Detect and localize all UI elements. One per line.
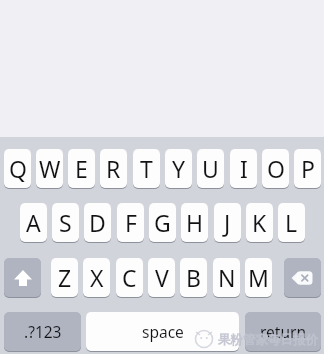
button[interactable]: U — [197, 149, 224, 188]
button[interactable]: P — [294, 149, 321, 188]
staticText: .?123 — [24, 321, 62, 342]
button[interactable]: F — [117, 203, 144, 242]
button[interactable] — [284, 258, 321, 297]
staticText: F — [125, 207, 137, 238]
button[interactable]: G — [149, 203, 176, 242]
staticText: V — [155, 262, 169, 293]
staticText: Y — [172, 153, 186, 184]
button[interactable]: J — [214, 203, 241, 242]
staticText: D — [89, 207, 106, 238]
staticText: M — [248, 262, 269, 293]
button[interactable]: W — [36, 149, 63, 188]
staticText: C — [122, 262, 137, 293]
button[interactable] — [4, 258, 41, 297]
button[interactable]: B — [180, 258, 207, 297]
button[interactable]: return — [245, 312, 321, 351]
button[interactable]: E — [68, 149, 95, 188]
staticText: R — [106, 153, 121, 184]
staticText: Q — [9, 153, 27, 184]
button[interactable]: K — [246, 203, 273, 242]
button[interactable]: H — [181, 203, 208, 242]
button[interactable]: T — [133, 149, 160, 188]
staticText: K — [252, 207, 267, 238]
button[interactable]: N — [213, 258, 240, 297]
button[interactable]: O — [262, 149, 289, 188]
staticText: L — [285, 207, 298, 238]
staticText: B — [186, 262, 201, 293]
staticText: T — [140, 153, 153, 184]
button[interactable]: Z — [51, 258, 78, 297]
button[interactable]: .?123 — [4, 312, 81, 351]
button[interactable]: A — [20, 203, 47, 242]
button[interactable]: Y — [165, 149, 192, 188]
staticText: 果粉管家每日报价 — [218, 332, 318, 348]
button[interactable]: I — [230, 149, 257, 188]
staticText: G — [154, 207, 171, 238]
staticText: space — [142, 321, 184, 342]
staticText: A — [26, 207, 41, 238]
staticText: U — [202, 153, 219, 184]
button[interactable]: L — [278, 203, 305, 242]
button[interactable]: M — [245, 258, 272, 297]
staticText: N — [218, 262, 236, 293]
staticText: P — [301, 153, 315, 184]
button[interactable]: D — [84, 203, 111, 242]
staticText: I — [240, 153, 248, 184]
staticText: Z — [58, 262, 72, 293]
staticText: return — [260, 321, 306, 342]
button[interactable]: Q — [4, 149, 31, 188]
staticText: O — [267, 153, 285, 184]
staticText: S — [59, 207, 72, 238]
button[interactable]: X — [83, 258, 110, 297]
staticText: W — [39, 153, 61, 184]
button[interactable]: C — [116, 258, 143, 297]
staticText: X — [90, 262, 104, 293]
staticText: J — [224, 207, 231, 238]
staticText: H — [186, 207, 204, 238]
button[interactable]: V — [148, 258, 175, 297]
button[interactable]: R — [100, 149, 127, 188]
button[interactable]: space — [86, 312, 239, 351]
button[interactable]: S — [52, 203, 79, 242]
staticText: E — [75, 153, 88, 184]
